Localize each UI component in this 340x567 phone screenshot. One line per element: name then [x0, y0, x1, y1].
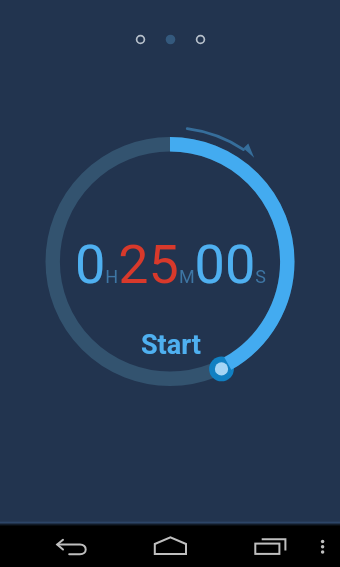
button[interactable]: Home	[113, 521, 226, 567]
button[interactable]: Recent apps	[226, 521, 306, 567]
button[interactable]: Start	[141, 329, 201, 361]
button[interactable]: 0H25M00S	[75, 233, 266, 296]
staticText: Start	[141, 329, 201, 361]
staticText: 0H25M00S	[75, 233, 266, 296]
button[interactable]: Timer dial	[0, 0, 340, 567]
button[interactable]: Back	[0, 521, 113, 567]
button[interactable]: More options	[306, 521, 340, 567]
